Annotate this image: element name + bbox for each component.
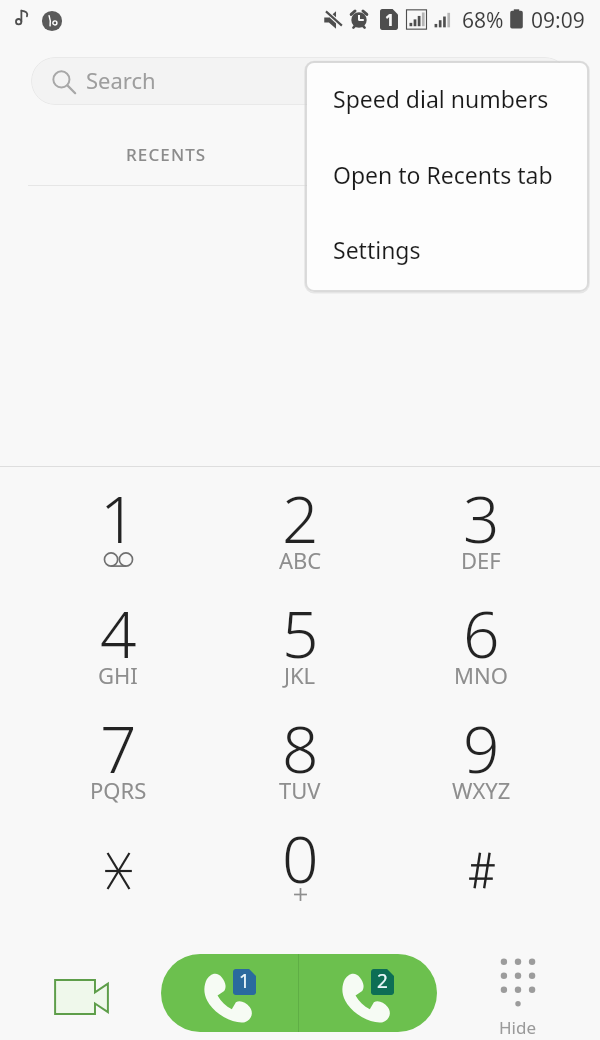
staticText: TUV (279, 775, 321, 805)
button[interactable]: 9 (397, 691, 565, 805)
staticText: 5 (282, 590, 319, 677)
button[interactable]: 2 (216, 461, 384, 575)
button[interactable]: Settings (307, 211, 587, 287)
button[interactable]: 8 (216, 691, 384, 805)
button[interactable]: * (34, 801, 202, 915)
staticText: 3 (463, 475, 500, 562)
staticText: 1 (239, 968, 250, 994)
staticText: RECENTS (126, 143, 207, 166)
button[interactable]: 6 (397, 576, 565, 690)
staticText: 2 (377, 968, 388, 994)
staticText: Open to Recents tab (333, 159, 553, 190)
button[interactable]: 7 (34, 691, 202, 805)
staticText: 4 (100, 590, 137, 677)
button[interactable]: 3 (397, 461, 565, 575)
staticText: 68% (462, 6, 504, 35)
button[interactable]: Video call (42, 958, 120, 1034)
staticText: 1 (100, 475, 137, 562)
staticText: 2 (282, 475, 319, 562)
button[interactable]: Speed dial numbers (307, 63, 587, 136)
staticText: 6 (463, 590, 500, 677)
staticText: WXYZ (452, 775, 511, 805)
button[interactable]: 5 (216, 576, 384, 690)
staticText: ABC (279, 545, 322, 575)
staticText: 09:09 (531, 6, 585, 35)
button[interactable]: 1 (34, 461, 202, 575)
staticText: Search (86, 65, 156, 95)
staticText: JKL (284, 660, 316, 690)
staticText: DEF (461, 545, 501, 575)
button[interactable]: Search (31, 57, 569, 105)
staticText: 8 (282, 705, 319, 792)
staticText: Hide (499, 1016, 537, 1039)
staticText: MNO (454, 660, 508, 690)
button[interactable]: 0 (216, 801, 384, 915)
staticText: 1 (385, 9, 395, 30)
staticText: GHI (98, 660, 138, 690)
staticText: 0 (282, 815, 319, 902)
button[interactable]: RECENTS (56, 124, 276, 184)
staticText: 7 (100, 705, 137, 792)
button[interactable]: Hide (468, 950, 568, 1040)
button[interactable]: 4 (34, 576, 202, 690)
button[interactable]: Open to Recents tab (307, 136, 587, 212)
staticText: 9 (463, 705, 500, 792)
staticText: Settings (333, 234, 421, 265)
button[interactable]: Call with SIM 2 (299, 954, 437, 1032)
staticText: Speed dial numbers (333, 83, 549, 114)
button[interactable]: Call with SIM 1 (161, 954, 298, 1032)
staticText: PQRS (90, 775, 147, 805)
button[interactable]: # (397, 801, 565, 915)
